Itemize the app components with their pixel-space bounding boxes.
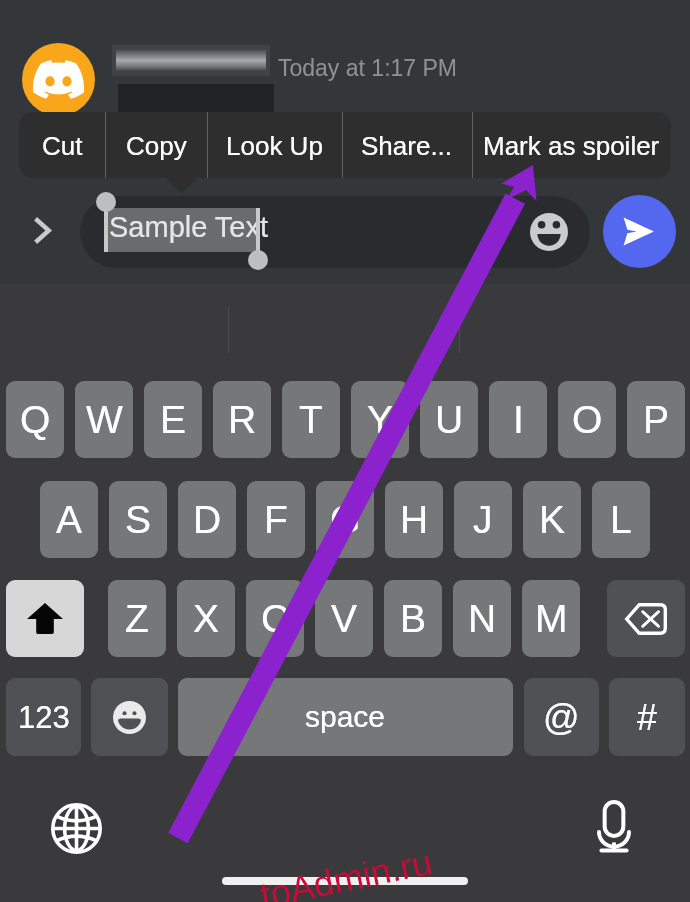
staticText: Cut <box>42 131 83 160</box>
staticText: E <box>160 398 187 442</box>
button[interactable]: Cut <box>19 112 105 178</box>
staticText: toAdmin.ru <box>257 841 436 902</box>
button[interactable]: C <box>246 580 304 657</box>
staticText: O <box>572 398 603 442</box>
staticText: Z <box>125 597 149 641</box>
button[interactable]: K <box>523 481 581 558</box>
button[interactable]: G <box>316 481 374 558</box>
staticText: U <box>435 398 464 442</box>
button[interactable] <box>80 196 590 268</box>
staticText: T <box>299 398 323 442</box>
button[interactable]: Mark as spoiler <box>472 112 671 178</box>
button[interactable]: Look Up <box>207 112 342 178</box>
staticText: N <box>468 597 497 641</box>
button[interactable]: V <box>315 580 373 657</box>
button[interactable]: Y <box>351 381 409 458</box>
staticText: @ <box>543 697 580 737</box>
button[interactable]: # <box>609 678 685 756</box>
staticText: X <box>193 597 220 641</box>
button[interactable]: P <box>627 381 685 458</box>
button[interactable]: Backspace <box>607 580 685 657</box>
button[interactable]: Z <box>108 580 166 657</box>
button[interactable]: T <box>282 381 340 458</box>
staticText: Q <box>20 398 51 442</box>
staticText: M <box>535 597 568 641</box>
button[interactable]: Share... <box>342 112 472 178</box>
staticText: Mark as spoiler <box>483 131 660 160</box>
button[interactable]: B <box>384 580 442 657</box>
button[interactable]: Avatar <box>22 43 95 116</box>
button[interactable]: W <box>75 381 133 458</box>
button[interactable]: J <box>454 481 512 558</box>
staticText: R <box>228 398 257 442</box>
button[interactable]: 123 <box>6 678 81 756</box>
staticText: Share... <box>361 131 453 160</box>
button[interactable]: Dictation <box>590 795 638 857</box>
staticText: G <box>330 498 361 542</box>
staticText: S <box>125 498 152 542</box>
button[interactable]: Emoji <box>523 206 574 257</box>
button[interactable]: E <box>144 381 202 458</box>
button[interactable]: R <box>213 381 271 458</box>
staticText: V <box>331 597 358 641</box>
staticText: Today at 1:17 PM <box>278 55 457 81</box>
staticText: L <box>610 498 632 542</box>
button[interactable]: D <box>178 481 236 558</box>
button[interactable]: Change keyboard <box>44 796 108 860</box>
staticText: F <box>264 498 288 542</box>
button[interactable]: F <box>247 481 305 558</box>
button[interactable]: I <box>489 381 547 458</box>
staticText: # <box>637 697 658 737</box>
button[interactable]: Expand actions <box>18 208 68 258</box>
button[interactable]: H <box>385 481 443 558</box>
button[interactable]: M <box>522 580 580 657</box>
button[interactable]: U <box>420 381 478 458</box>
button[interactable]: N <box>453 580 511 657</box>
staticText: H <box>400 498 429 542</box>
staticText: I <box>513 398 524 442</box>
button[interactable]: X <box>177 580 235 657</box>
button[interactable]: Emoji keyboard <box>91 678 168 756</box>
button[interactable]: Shift <box>6 580 84 657</box>
staticText: K <box>539 498 566 542</box>
staticText: P <box>643 398 670 442</box>
button[interactable]: Q <box>6 381 64 458</box>
staticText: space <box>305 700 386 734</box>
button[interactable]: space <box>178 678 513 756</box>
staticText: D <box>193 498 222 542</box>
button[interactable]: @ <box>524 678 599 756</box>
button[interactable]: A <box>40 481 98 558</box>
staticText: C <box>261 597 290 641</box>
staticText: Y <box>367 398 394 442</box>
staticText: Sample Text <box>109 211 269 243</box>
button[interactable]: Send <box>603 195 676 268</box>
button[interactable]: S <box>109 481 167 558</box>
button[interactable]: Copy <box>105 112 207 178</box>
staticText: A <box>56 498 83 542</box>
staticText: W <box>86 398 123 442</box>
staticText: Copy <box>126 131 187 160</box>
staticText: Look Up <box>226 131 323 160</box>
button[interactable]: O <box>558 381 616 458</box>
staticText: B <box>400 597 427 641</box>
button[interactable]: L <box>592 481 650 558</box>
staticText: 123 <box>18 700 70 735</box>
staticText: J <box>473 498 493 542</box>
